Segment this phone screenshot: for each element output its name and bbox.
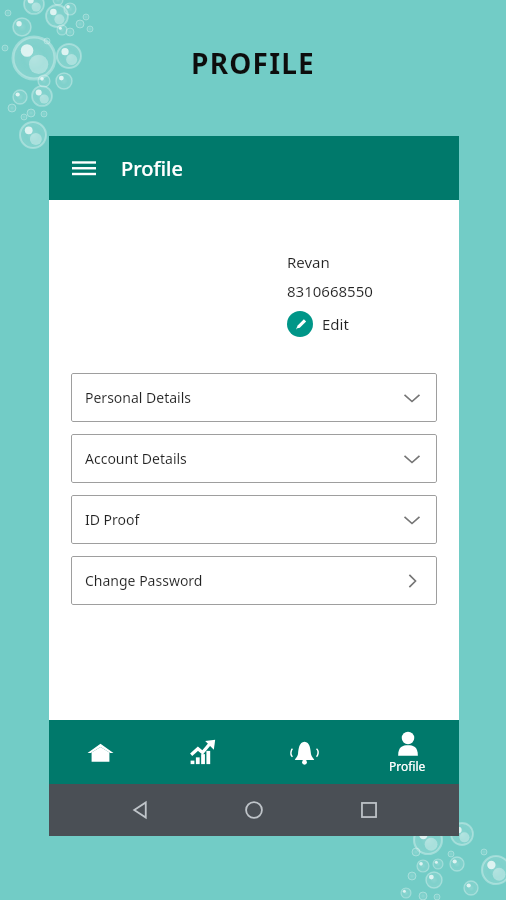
- button[interactable]: Account Details: [71, 434, 437, 483]
- staticText: Profile: [121, 155, 183, 182]
- button[interactable]: Change Password: [71, 556, 437, 605]
- button[interactable]: ID Proof: [71, 495, 437, 544]
- button[interactable]: Edit: [287, 311, 349, 337]
- staticText: Revan: [287, 252, 330, 272]
- staticText: Edit: [322, 314, 349, 334]
- button[interactable]: Home: [230, 786, 278, 834]
- button[interactable]: Notifications: [253, 720, 356, 784]
- staticText: Change Password: [85, 571, 203, 590]
- staticText: 8310668550: [287, 281, 373, 301]
- button[interactable]: Personal Details: [71, 373, 437, 422]
- staticText: PROFILE: [191, 44, 315, 82]
- staticText: Personal Details: [85, 388, 192, 407]
- button[interactable]: Home: [49, 720, 151, 784]
- button[interactable]: Back: [116, 786, 164, 834]
- button[interactable]: Profile: [356, 720, 459, 784]
- staticText: ID Proof: [85, 510, 140, 529]
- button[interactable]: Statistics: [151, 720, 253, 784]
- button[interactable]: Recent apps: [345, 786, 393, 834]
- staticText: Account Details: [85, 449, 187, 468]
- staticText: Profile: [389, 758, 426, 774]
- button[interactable]: Open navigation menu: [65, 149, 103, 187]
